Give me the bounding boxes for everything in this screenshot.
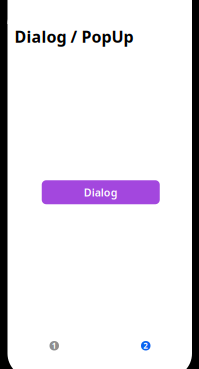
staticText: 2 bbox=[143, 340, 148, 351]
button[interactable]: Dialog bbox=[42, 180, 160, 204]
staticText: Dialog / PopUp bbox=[14, 26, 133, 47]
button[interactable]: Page 2 bbox=[141, 341, 150, 350]
staticText: 1 bbox=[52, 340, 57, 351]
staticText: Dialog bbox=[84, 185, 118, 199]
button[interactable]: Page 1 bbox=[49, 341, 59, 350]
